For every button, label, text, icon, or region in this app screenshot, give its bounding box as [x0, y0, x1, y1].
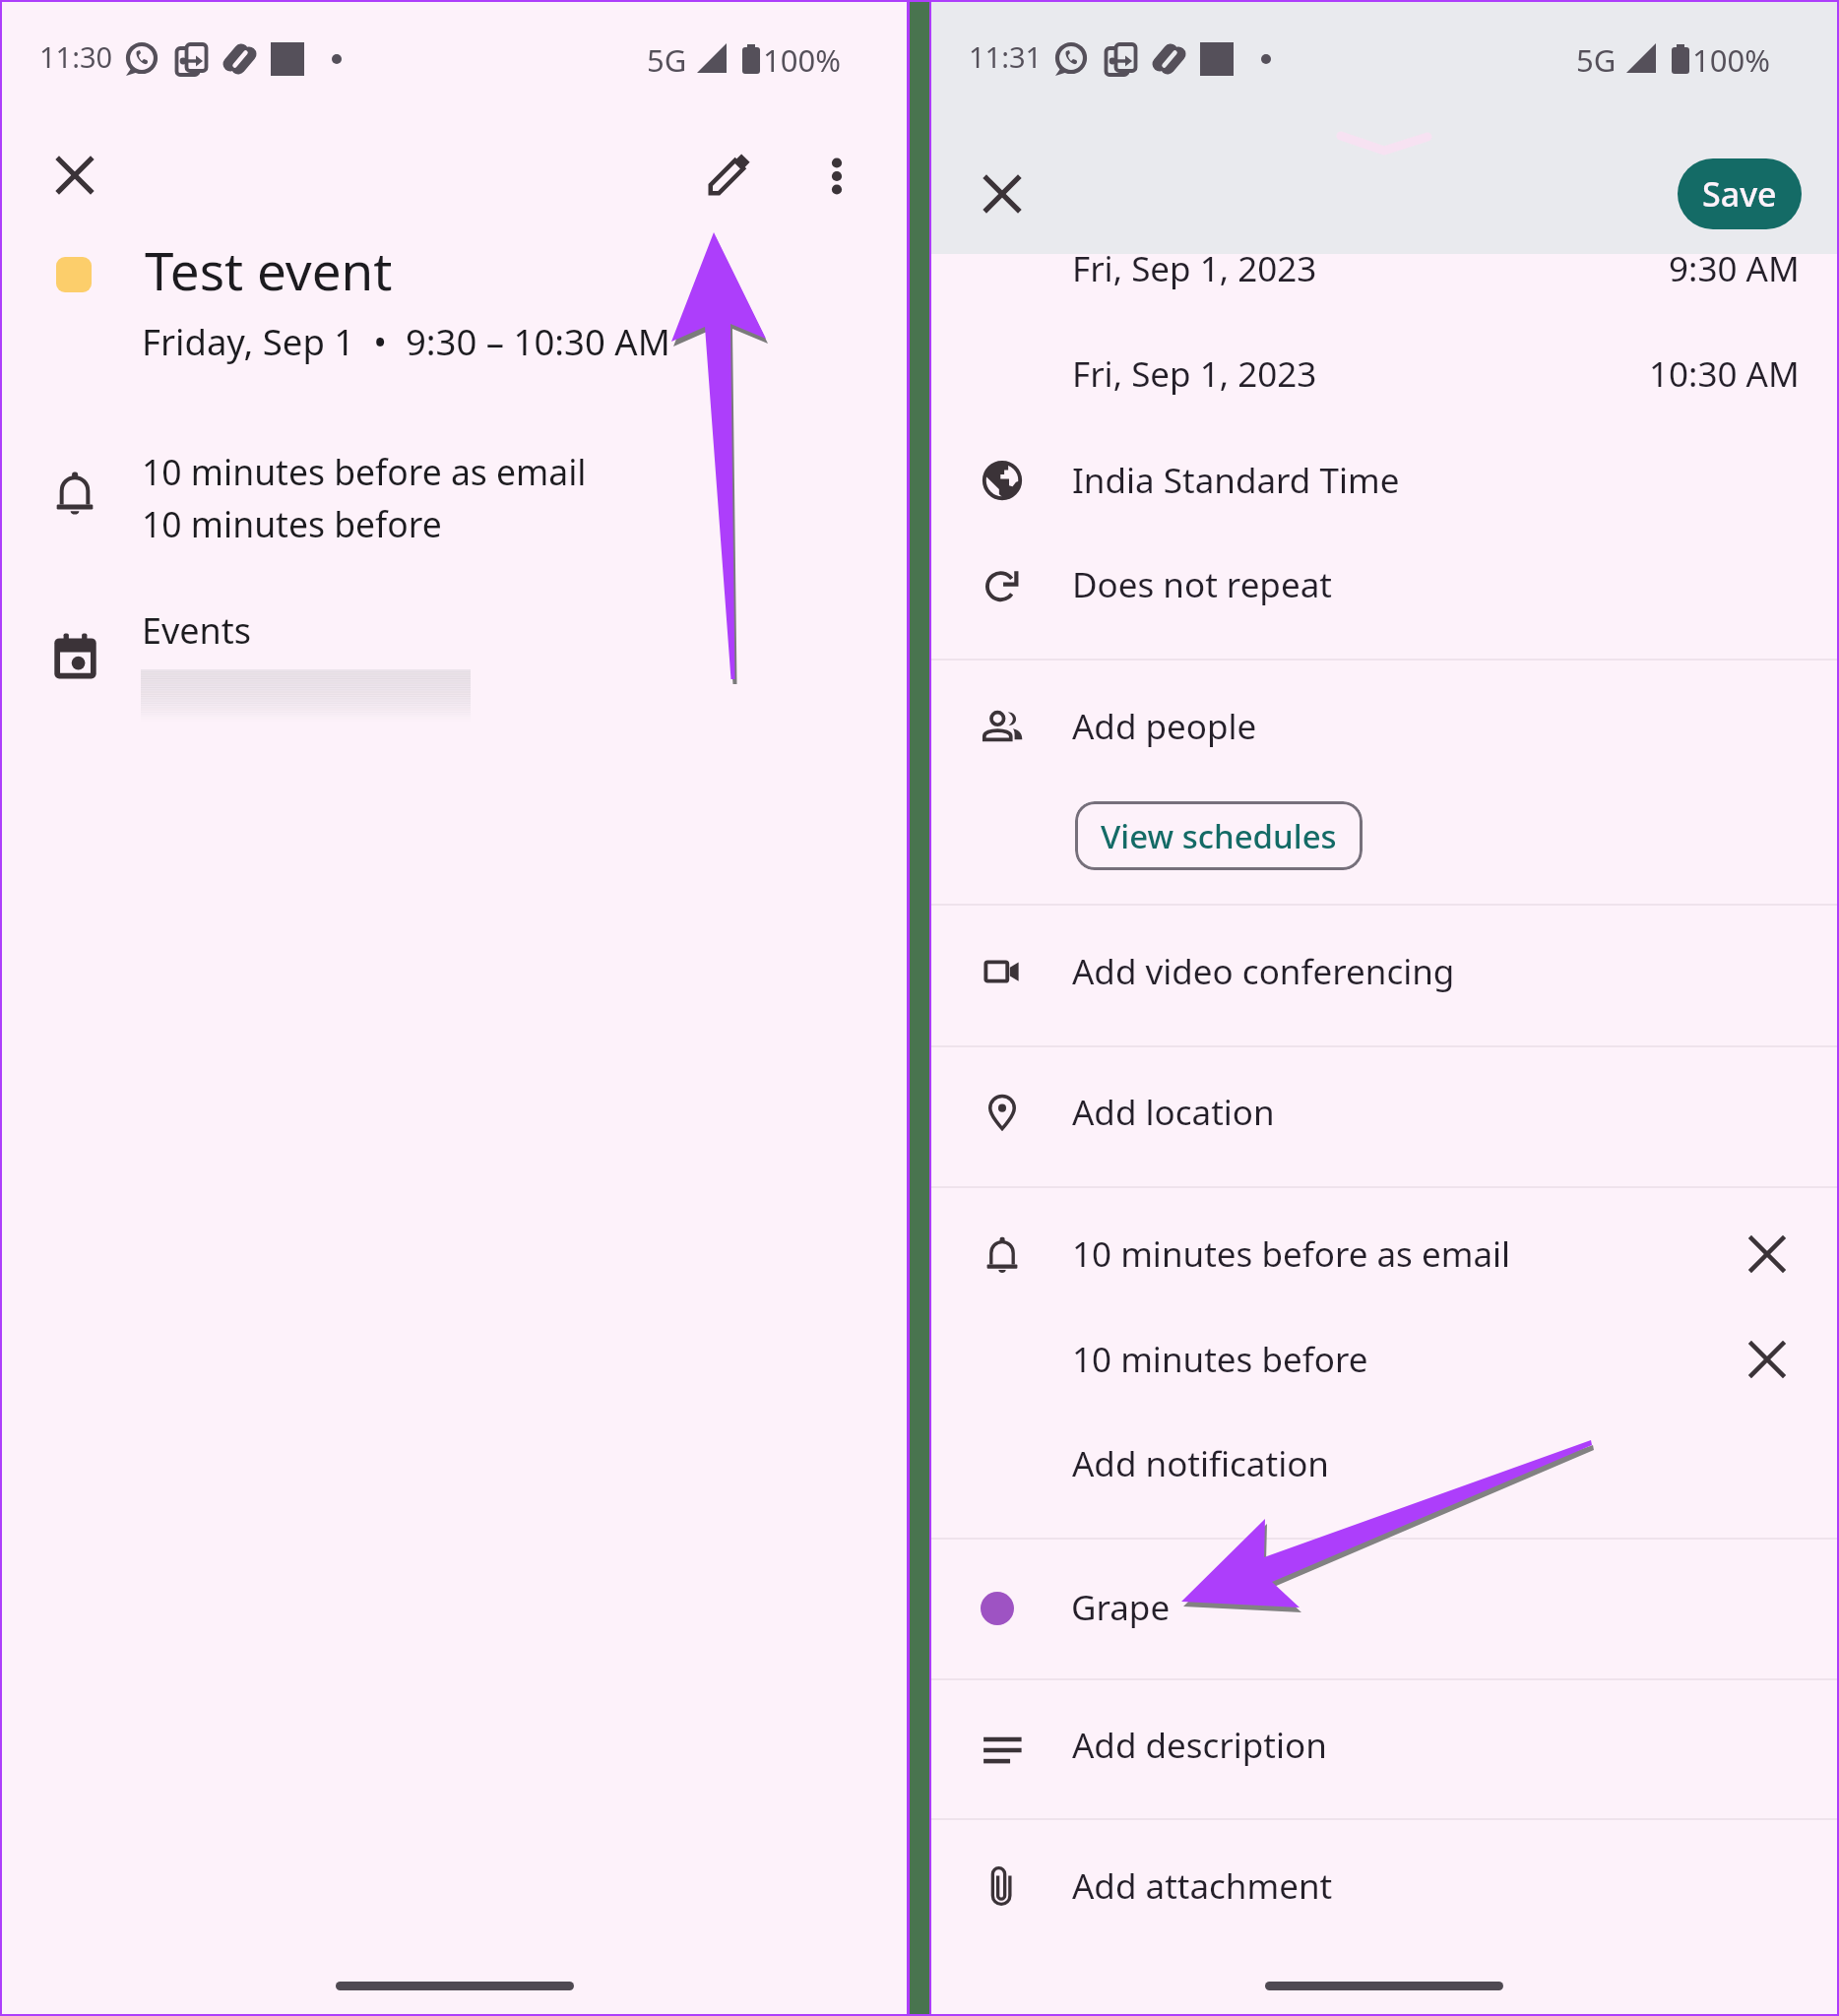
- button[interactable]: Save: [1678, 158, 1802, 229]
- staticText: Add description: [1072, 1722, 1327, 1769]
- button[interactable]: More options: [809, 149, 864, 204]
- button[interactable]: 10 minutes before: [931, 1307, 1837, 1412]
- staticText: View schedules: [1101, 814, 1337, 858]
- button[interactable]: Add location: [931, 1060, 1837, 1165]
- staticText: 10 minutes before as email: [1072, 1230, 1511, 1278]
- staticText: India Standard Time: [1072, 457, 1400, 504]
- button[interactable]: Add notification: [931, 1412, 1837, 1516]
- button[interactable]: Remove: [1737, 1224, 1798, 1285]
- staticText: Fri, Sep 1, 2023: [1072, 245, 1317, 292]
- staticText: Grape: [1071, 1584, 1171, 1631]
- staticText: Add location: [1072, 1089, 1275, 1136]
- staticText: 100%: [763, 39, 841, 81]
- button[interactable]: 10 minutes before as email: [2, 435, 907, 553]
- staticText: Events: [142, 606, 252, 655]
- button[interactable]: View schedules: [1075, 801, 1363, 870]
- staticText: 5G: [1576, 39, 1617, 81]
- button[interactable]: Does not repeat: [931, 533, 1837, 637]
- button[interactable]: Grape: [931, 1538, 1837, 1678]
- staticText: Add video conferencing: [1072, 948, 1455, 995]
- button[interactable]: Add video conferencing: [931, 919, 1837, 1024]
- button[interactable]: Add attachment: [931, 1834, 1837, 1938]
- staticText: Test event: [145, 234, 393, 305]
- staticText: Save: [1702, 171, 1777, 217]
- staticText: Fri, Sep 1, 2023: [1072, 350, 1317, 398]
- button[interactable]: Fri, Sep 1, 2023: [931, 322, 1837, 426]
- button[interactable]: Events: [2, 593, 907, 730]
- staticText: 11:31: [969, 37, 1043, 76]
- staticText: 10:30 AM: [1649, 350, 1800, 398]
- staticText: Friday, Sep 1 • 9:30 – 10:30 AM: [142, 317, 670, 366]
- staticText: Add attachment: [1072, 1862, 1333, 1910]
- staticText: 100%: [1692, 39, 1770, 81]
- staticText: Does not repeat: [1072, 561, 1332, 608]
- staticText: 10 minutes before: [1072, 1336, 1368, 1383]
- button[interactable]: Close: [975, 166, 1030, 221]
- staticText: 10 minutes before: [142, 500, 442, 547]
- button[interactable]: Remove: [1737, 1329, 1798, 1390]
- button[interactable]: Test event: [2, 228, 907, 376]
- staticText: 9:30 AM: [1669, 245, 1800, 292]
- button[interactable]: India Standard Time: [931, 428, 1837, 533]
- staticText: Add people: [1072, 703, 1257, 750]
- staticText: 5G: [647, 39, 687, 81]
- staticText: 11:30: [39, 37, 113, 76]
- staticText: 10 minutes before as email: [142, 448, 587, 495]
- staticText: Add notification: [1072, 1440, 1329, 1487]
- button[interactable]: Fri, Sep 1, 2023: [931, 217, 1837, 321]
- button[interactable]: 10 minutes before as email: [931, 1202, 1837, 1306]
- button[interactable]: Close: [47, 148, 102, 203]
- button[interactable]: Add people: [931, 674, 1837, 779]
- button[interactable]: Add description: [931, 1693, 1837, 1797]
- button[interactable]: Edit: [703, 146, 758, 201]
